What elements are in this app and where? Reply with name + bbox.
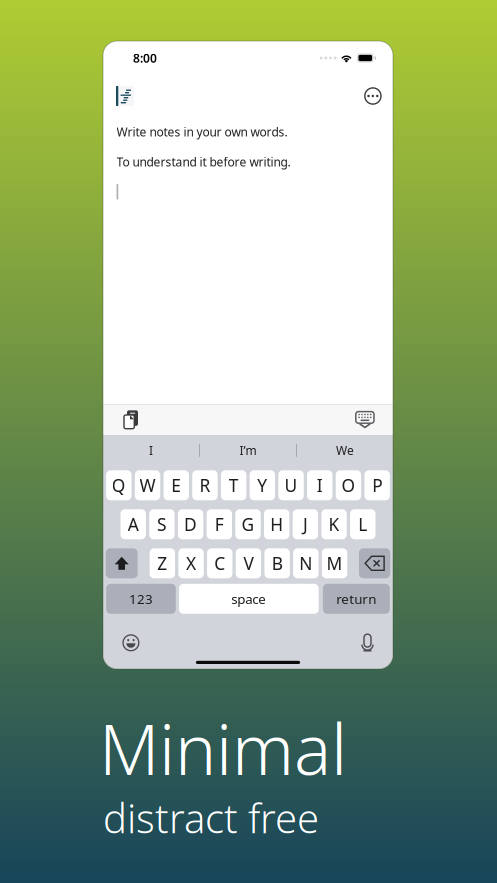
button[interactable]: X [178, 548, 204, 578]
button[interactable]: F [207, 509, 232, 539]
staticText: return [336, 590, 376, 608]
button[interactable]: H [264, 509, 289, 539]
staticText: S [157, 513, 167, 536]
staticText: X [186, 552, 196, 575]
button[interactable]: Y [250, 470, 275, 500]
button[interactable]: Paste [124, 410, 138, 429]
button[interactable]: V [236, 548, 261, 578]
button[interactable]: Delete [359, 548, 390, 578]
staticText: space [231, 590, 266, 608]
button[interactable]: S [149, 509, 175, 539]
staticText: W [139, 474, 155, 497]
staticText: K [329, 513, 340, 536]
button[interactable]: C [207, 548, 232, 578]
staticText: R [199, 474, 210, 497]
button[interactable]: Hide keyboard [356, 412, 374, 427]
button[interactable]: D [178, 509, 203, 539]
button[interactable]: O [336, 470, 361, 500]
button[interactable]: M [322, 548, 347, 578]
staticText: O [341, 474, 355, 497]
staticText: H [270, 513, 283, 536]
button[interactable]: Emoji [123, 635, 139, 651]
staticText: F [215, 513, 224, 536]
button[interactable]: E [163, 470, 189, 500]
staticText: 8:00 [133, 50, 157, 66]
button[interactable]: B [264, 548, 290, 578]
staticText: I [149, 442, 153, 458]
staticText: U [284, 474, 297, 497]
button[interactable]: I [307, 470, 332, 500]
button[interactable]: U [278, 470, 304, 500]
staticText: B [272, 552, 283, 575]
staticText: We [336, 442, 354, 458]
button[interactable]: K [321, 509, 347, 539]
staticText: V [243, 552, 253, 575]
button[interactable]: L [350, 509, 375, 539]
staticText: A [128, 513, 139, 536]
staticText: Write notes in your own words. [116, 124, 287, 140]
staticText: Q [112, 474, 126, 497]
staticText: To understand it before writing. [116, 154, 290, 170]
button[interactable]: N [293, 548, 318, 578]
button[interactable]: Shift [106, 548, 138, 578]
staticText: 123 [129, 590, 153, 608]
button[interactable]: R [192, 470, 218, 500]
button[interactable]: A [120, 509, 146, 539]
staticText: G [241, 513, 254, 536]
staticText: P [372, 474, 382, 497]
staticText: L [358, 513, 367, 536]
button[interactable]: G [235, 509, 261, 539]
button[interactable]: J [293, 509, 318, 539]
staticText: M [327, 552, 343, 575]
button[interactable]: space [179, 584, 319, 614]
button[interactable]: P [364, 470, 390, 500]
button[interactable]: Dictate [362, 633, 373, 653]
button[interactable]: More options [365, 88, 381, 104]
staticText: C [214, 552, 225, 575]
staticText: Y [257, 474, 267, 497]
staticText: E [171, 474, 181, 497]
staticText: distract free [103, 791, 319, 844]
staticText: J [303, 513, 308, 536]
button[interactable]: W [135, 470, 160, 500]
staticText: Z [157, 552, 167, 575]
staticText: I’m [239, 442, 256, 458]
staticText: T [229, 474, 239, 497]
button[interactable]: Z [150, 548, 175, 578]
staticText: N [299, 552, 312, 575]
staticText: Minimal [99, 702, 347, 794]
staticText: D [184, 513, 197, 536]
button[interactable]: 123 [106, 584, 176, 614]
button[interactable]: T [221, 470, 246, 500]
button[interactable]: return [323, 584, 390, 614]
button[interactable]: Q [106, 470, 131, 500]
staticText: I [317, 474, 323, 497]
